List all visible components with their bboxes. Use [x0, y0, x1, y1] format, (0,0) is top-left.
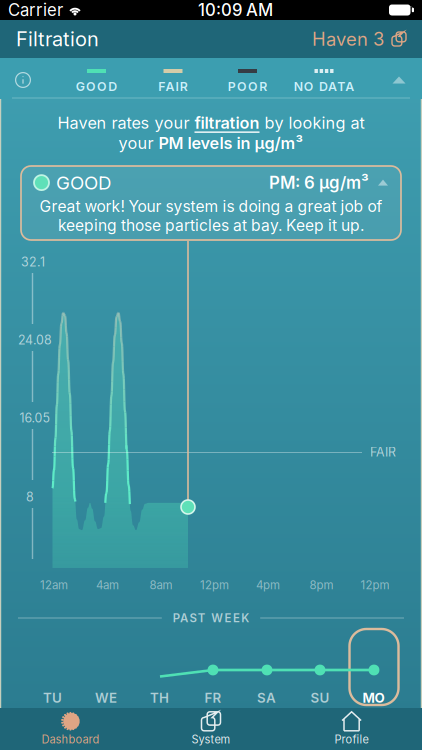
- staticText: TU: [43, 690, 62, 706]
- staticText: 24.08: [18, 332, 52, 347]
- staticText: TH: [150, 690, 169, 706]
- staticText: 12pm: [360, 578, 389, 592]
- staticText: keeping those particles at bay. Keep it …: [58, 216, 364, 235]
- button[interactable]: FAIR: [152, 64, 194, 99]
- staticText: MO: [362, 690, 384, 706]
- staticText: 8: [26, 489, 34, 504]
- staticText: 12pm: [200, 578, 229, 592]
- staticText: Filtration: [16, 27, 99, 51]
- staticText: NO DATA: [294, 79, 354, 94]
- staticText: 16.05: [19, 410, 50, 425]
- staticText: Profile: [335, 733, 369, 746]
- button[interactable]: GOOD: [70, 64, 123, 99]
- staticText: Carrier: [8, 0, 63, 20]
- staticText: PAST WEEK: [173, 611, 249, 625]
- staticText: Haven 3: [312, 28, 384, 50]
- staticText: 32.1: [21, 254, 45, 269]
- staticText: Dashboard: [41, 733, 99, 746]
- button[interactable]: Dashboard: [0, 708, 141, 750]
- button[interactable]: POOR: [222, 64, 273, 99]
- staticText: 12am: [40, 578, 68, 592]
- staticText: 8pm: [309, 578, 333, 592]
- staticText: Haven rates your filtration by looking a…: [57, 113, 364, 132]
- staticText: POOR: [228, 79, 267, 94]
- staticText: Great work! Your system is doing a great…: [39, 197, 382, 216]
- staticText: System: [191, 733, 230, 746]
- button[interactable]: Info: [7, 64, 39, 96]
- staticText: 4am: [96, 578, 119, 592]
- staticText: SU: [310, 690, 329, 706]
- staticText: 4pm: [256, 578, 280, 592]
- button[interactable]: Haven 3: [312, 22, 406, 56]
- staticText: GOOD: [56, 171, 111, 194]
- staticText: SA: [257, 690, 276, 706]
- staticText: WE: [95, 690, 117, 706]
- staticText: 8am: [149, 578, 172, 592]
- button[interactable]: Profile: [281, 708, 422, 750]
- button[interactable]: System: [141, 708, 281, 750]
- button[interactable]: Collapse legend: [383, 67, 414, 92]
- staticText: FAIR: [370, 444, 396, 459]
- button[interactable]: NO DATA: [288, 64, 360, 99]
- staticText: FR: [204, 690, 221, 706]
- staticText: your PM levels in µg/m³: [118, 133, 303, 153]
- staticText: 10:09 AM: [198, 0, 273, 20]
- staticText: FAIR: [158, 79, 188, 94]
- staticText: GOOD: [76, 79, 117, 94]
- staticText: PM: 6 µg/m³: [269, 172, 369, 193]
